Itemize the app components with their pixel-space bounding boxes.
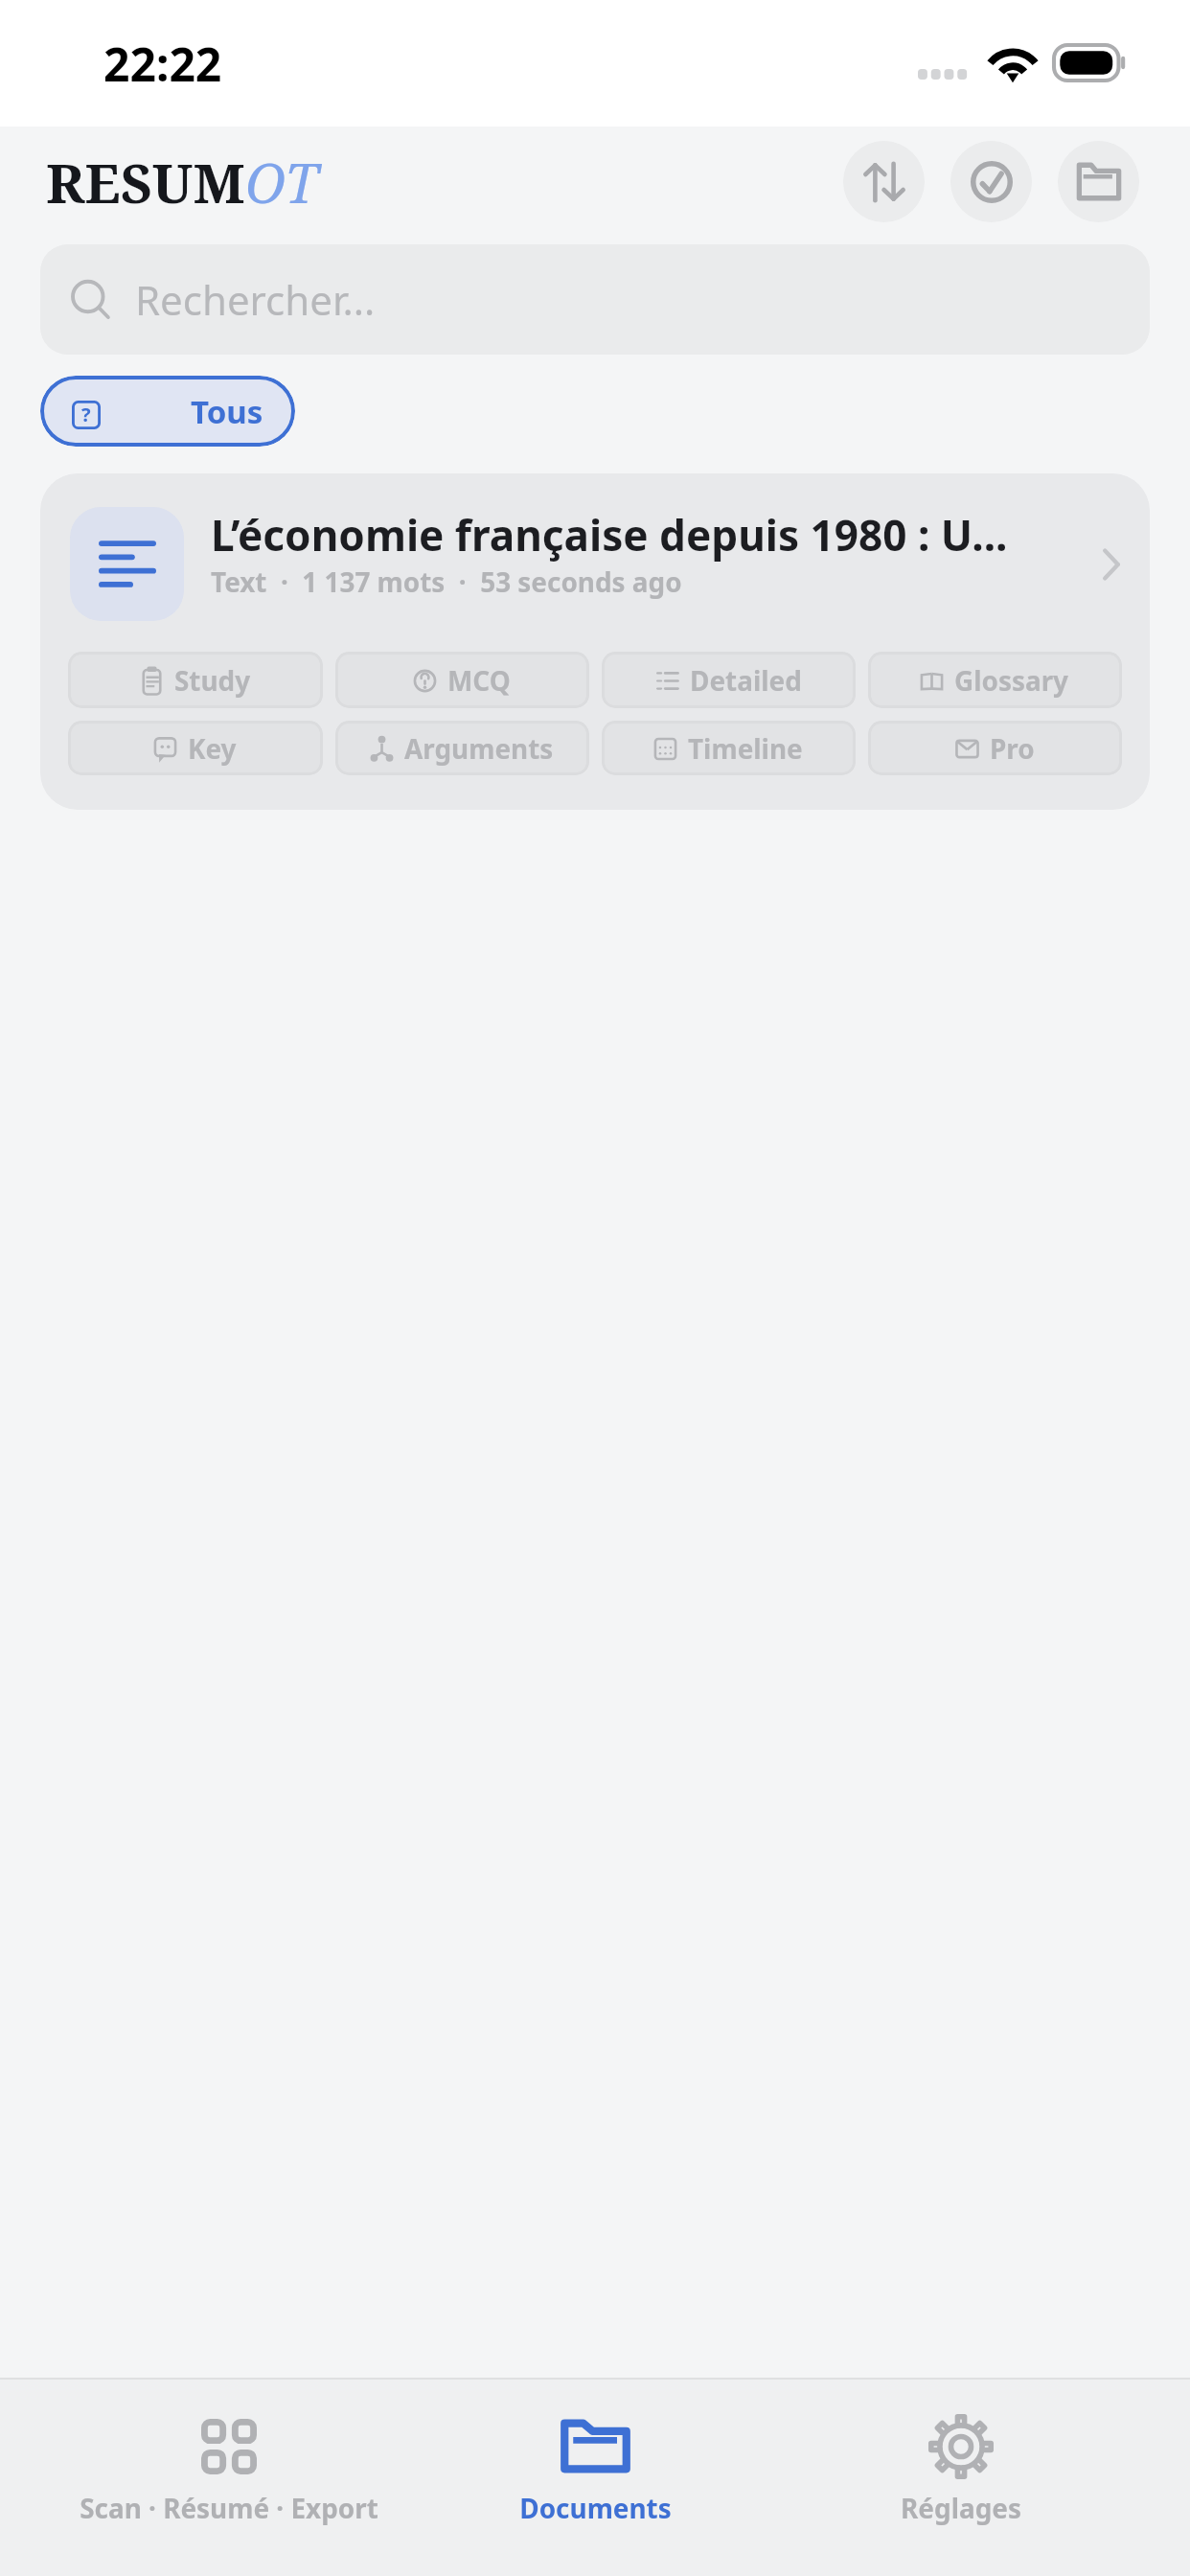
button[interactable]: Sort (843, 141, 925, 222)
staticText: 22:22 (103, 33, 222, 95)
staticText: Glossary (954, 662, 1069, 699)
button[interactable]: Glossary (868, 652, 1122, 708)
button[interactable]: L’économie française depuis 1980 : U... (70, 507, 1120, 621)
button[interactable]: Pro (868, 721, 1122, 775)
staticText: Rechercher... (135, 272, 376, 327)
button[interactable]: Réglages (778, 2380, 1144, 2576)
button[interactable]: Study (68, 652, 323, 708)
button[interactable]: ? (40, 376, 295, 447)
staticText: Text · 1 137 mots · 53 seconds ago (211, 563, 682, 600)
button[interactable]: Scan · Résumé · Export (46, 2380, 412, 2576)
staticText: MCQ (447, 662, 511, 699)
staticText: Documents (519, 2490, 672, 2526)
staticText: Study (174, 662, 251, 699)
staticText: Réglages (901, 2490, 1021, 2526)
button[interactable]: Timeline (602, 721, 856, 775)
button[interactable]: Key (68, 721, 323, 775)
button[interactable]: MCQ (335, 652, 589, 708)
staticText: ? (81, 402, 91, 427)
button[interactable]: Documents (412, 2380, 778, 2576)
button[interactable]: Arguments (335, 721, 589, 775)
button[interactable]: Folders (1058, 141, 1139, 222)
staticText: L’économie française depuis 1980 : U... (211, 506, 1008, 563)
staticText: Scan · Résumé · Export (80, 2490, 378, 2526)
staticText: Tous (191, 390, 263, 433)
staticText: Timeline (688, 730, 803, 767)
staticText: Arguments (404, 730, 554, 767)
button[interactable]: Select all (950, 141, 1032, 222)
button[interactable]: Rechercher... (40, 244, 1150, 355)
staticText: Key (188, 730, 237, 767)
staticText: Detailed (690, 662, 802, 699)
staticText: RESUM (46, 145, 245, 219)
staticText: Pro (990, 730, 1035, 767)
staticText: OT (245, 145, 319, 219)
button[interactable]: Detailed (602, 652, 856, 708)
